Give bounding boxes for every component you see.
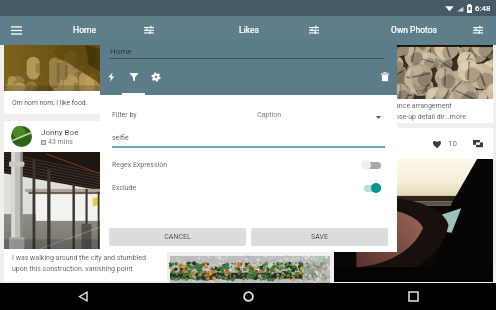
staticText: Regex Expression [112, 161, 168, 169]
button[interactable]: Settings [145, 66, 167, 88]
button[interactable]: Filter Own Photos [467, 18, 489, 41]
button[interactable]: Caption [250, 107, 388, 123]
button[interactable]: Recent apps [331, 283, 496, 310]
staticText: Caption [257, 111, 282, 119]
button[interactable]: Back [0, 283, 166, 310]
button[interactable]: Delete [374, 66, 396, 88]
button[interactable]: Filter Home [138, 18, 160, 41]
button[interactable]: Filter [123, 66, 145, 88]
button[interactable]: Own Photos [369, 16, 459, 43]
staticText: 2 hrs [340, 144, 356, 152]
staticText: CANCEL [164, 233, 191, 241]
staticText: 6:48 [475, 4, 491, 13]
staticText: Jonny Boe [41, 128, 79, 137]
button[interactable]: Flash [100, 66, 122, 88]
staticText: Home [73, 25, 96, 35]
staticText: Nice pen performance arrangement Some ma… [341, 102, 466, 121]
button[interactable]: Home [166, 283, 331, 310]
button[interactable]: CANCEL [109, 228, 246, 246]
button[interactable]: Filter Likes [303, 18, 325, 41]
button[interactable]: Regex Expression [100, 155, 397, 175]
button[interactable]: SAVE [251, 228, 388, 246]
staticText: Filter by [112, 111, 137, 119]
staticText: 10 [448, 139, 457, 148]
staticText: Likes [239, 25, 259, 35]
staticText: Om nom nom, I like food. [12, 99, 88, 107]
button[interactable]: Home [39, 16, 129, 43]
staticText: Exclude [112, 184, 137, 192]
staticText: 43 mins [48, 138, 73, 146]
button[interactable]: Likes [204, 16, 294, 43]
staticText: SAVE [311, 233, 328, 241]
staticText: selfie [112, 134, 129, 142]
button[interactable]: Open navigation drawer [5, 16, 27, 43]
staticText: Own Photos [391, 25, 437, 35]
staticText: Home [110, 47, 132, 56]
staticText: I was walking around the city and stumbl… [12, 254, 162, 273]
button[interactable]: Exclude [100, 178, 397, 198]
